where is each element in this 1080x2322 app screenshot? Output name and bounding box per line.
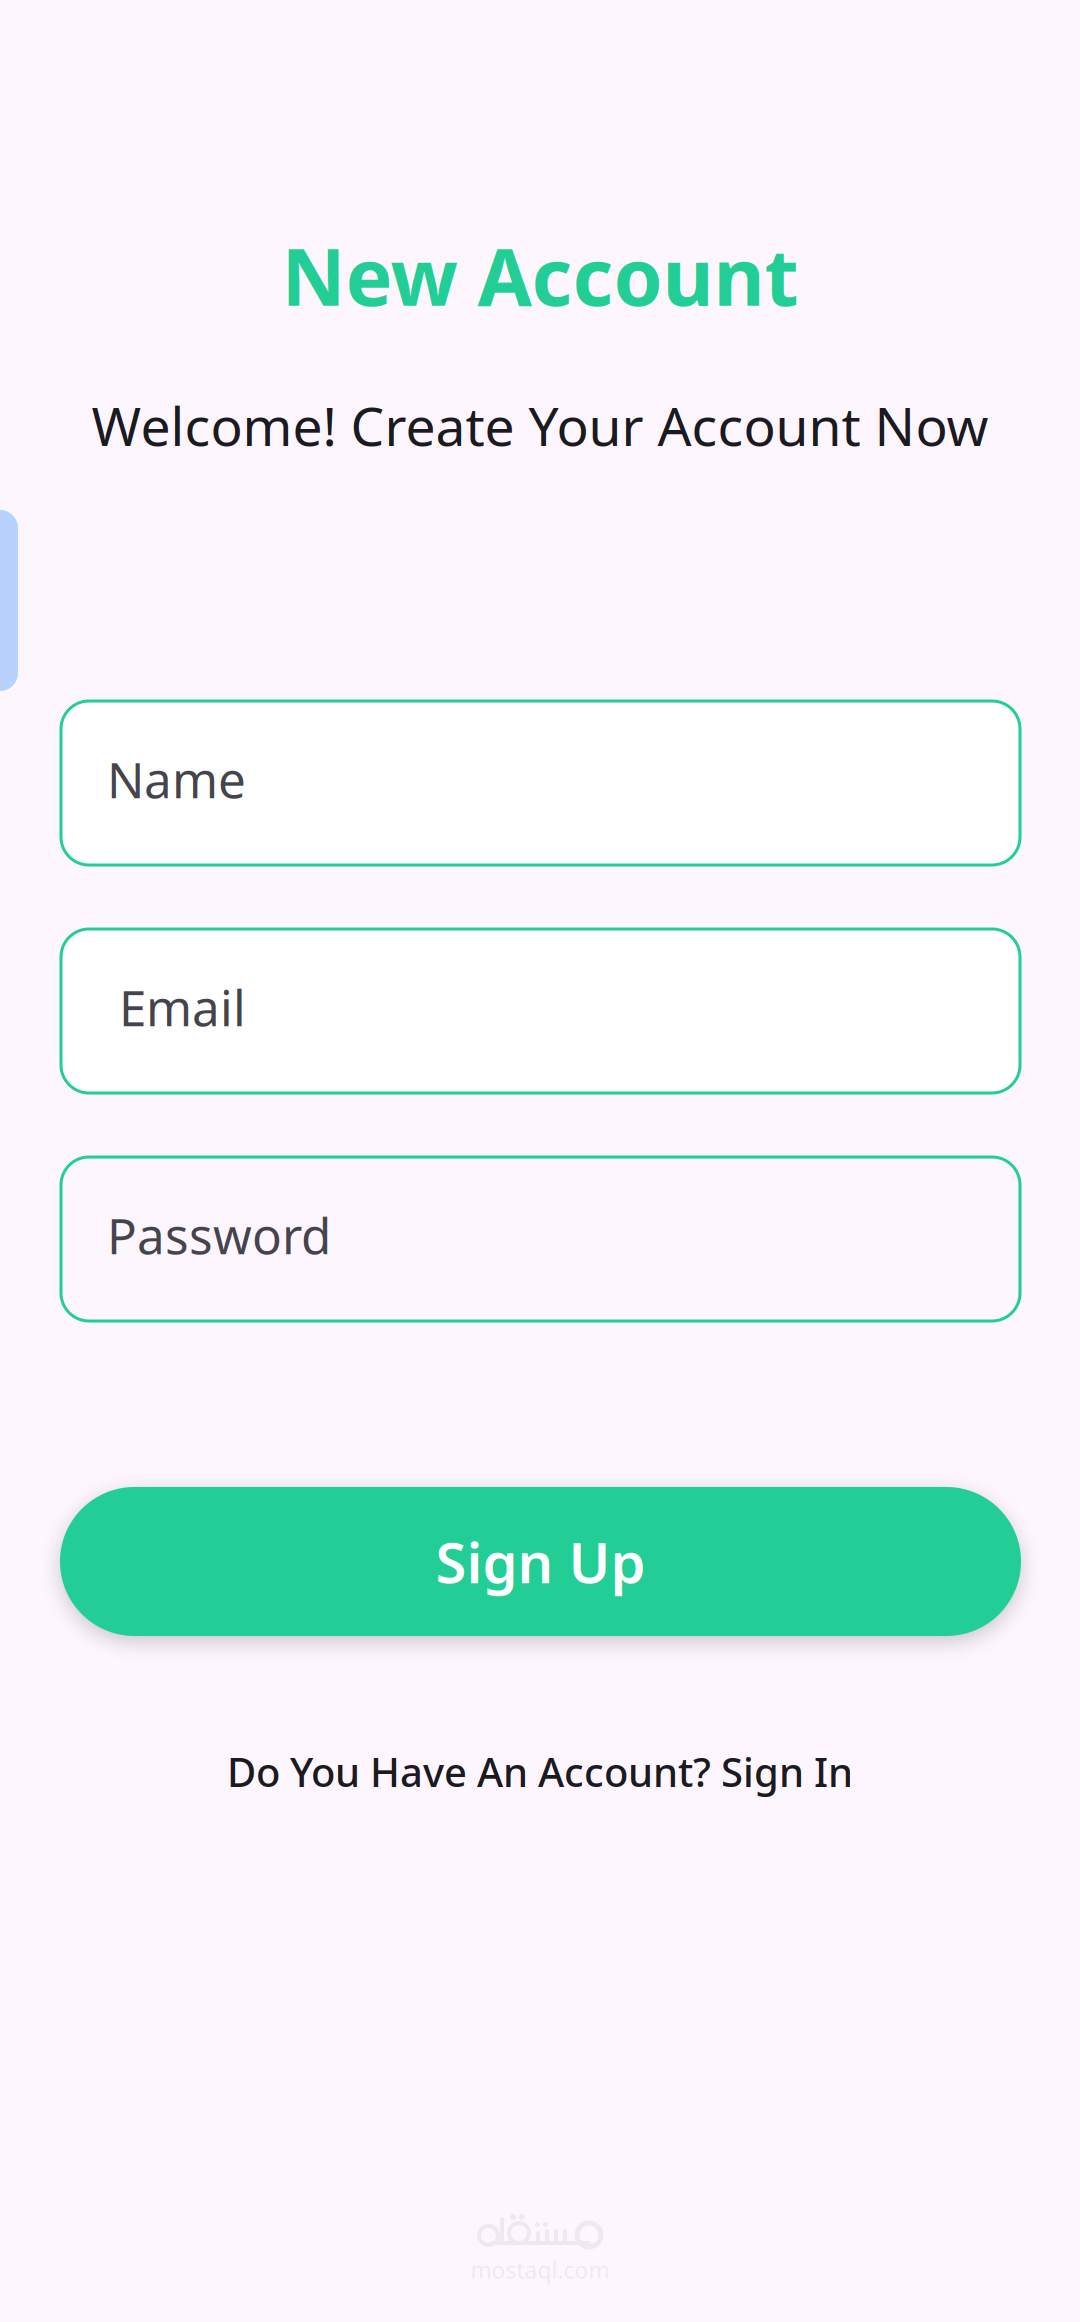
button[interactable]: Password — [61, 1157, 1020, 1321]
staticText: Welcome! Create Your Account Now — [91, 390, 988, 461]
staticText: Name — [107, 746, 246, 812]
staticText: New Account — [281, 223, 798, 327]
button[interactable]: Do You Have An Account? Sign In — [227, 1745, 853, 1798]
staticText: Password — [107, 1202, 331, 1268]
staticText: mostaql.com — [470, 2255, 609, 2285]
button[interactable]: Email — [61, 929, 1020, 1093]
button[interactable]: Name — [61, 701, 1020, 865]
button[interactable]: Sign Up — [60, 1487, 1021, 1636]
staticText: Email — [119, 974, 246, 1040]
staticText: Sign Up — [435, 1524, 645, 1599]
staticText: Do You Have An Account? Sign In — [227, 1745, 853, 1798]
